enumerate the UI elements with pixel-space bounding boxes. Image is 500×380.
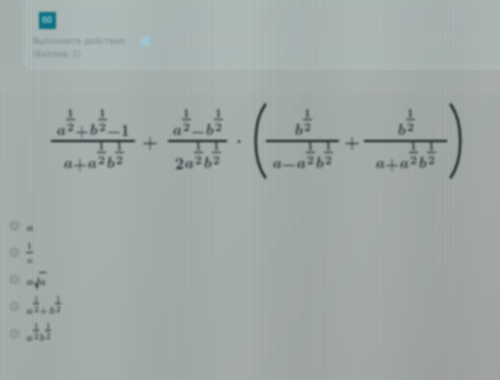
staticText: 2	[213, 151, 220, 168]
staticText: 1	[116, 137, 123, 154]
staticText: 2	[304, 118, 311, 135]
staticText: 2	[34, 330, 39, 341]
staticText: 2	[56, 303, 61, 314]
staticText: 1	[304, 104, 311, 121]
staticText: 2	[116, 151, 123, 168]
staticText: a	[375, 150, 385, 173]
staticText: 1	[183, 104, 190, 121]
staticText: a	[172, 117, 182, 140]
staticText: b	[49, 302, 55, 317]
staticText: a	[296, 150, 306, 173]
staticText: 1	[98, 137, 105, 154]
staticText: 2	[195, 151, 202, 168]
staticText: +	[39, 302, 49, 317]
staticText: b	[294, 117, 303, 140]
staticText: 1	[428, 137, 435, 154]
staticText: b	[397, 117, 406, 140]
staticText: b	[418, 150, 427, 173]
staticText: a	[26, 329, 33, 344]
staticText: a	[26, 302, 33, 317]
staticText: a	[39, 273, 46, 288]
staticText: 2	[410, 151, 417, 168]
staticText: 2	[215, 118, 222, 135]
staticText: 1	[407, 104, 414, 121]
staticText: ·	[231, 128, 248, 154]
staticText: 1	[34, 320, 39, 331]
staticText: 1	[27, 239, 33, 252]
staticText: b	[106, 150, 115, 173]
staticText: b	[315, 150, 324, 173]
staticText: a	[272, 150, 282, 173]
staticText: +	[385, 151, 399, 173]
staticText: 1	[215, 104, 222, 121]
staticText: 2	[175, 151, 184, 173]
staticText: a	[56, 117, 66, 140]
staticText: b	[205, 117, 214, 140]
staticText: 2	[46, 330, 51, 341]
staticText: a	[63, 150, 73, 173]
staticText: 60	[42, 16, 53, 25]
staticText: b	[89, 117, 98, 140]
staticText: 1	[195, 137, 202, 154]
staticText: Выполните действия:	[33, 36, 127, 46]
staticText: 2	[98, 151, 105, 168]
staticText: b	[203, 150, 212, 173]
button[interactable]: a	[0, 293, 500, 320]
staticText: a	[26, 272, 33, 288]
staticText: −	[191, 118, 205, 140]
button[interactable]: 60	[39, 12, 56, 29]
staticText: a	[27, 253, 33, 266]
staticText: 1	[46, 320, 51, 331]
staticText: −	[282, 151, 296, 173]
staticText: 2	[407, 118, 414, 135]
staticText: 2	[34, 303, 39, 314]
staticText: 1	[56, 293, 61, 304]
staticText: +	[344, 128, 361, 154]
staticText: 2	[307, 151, 314, 168]
staticText: 2	[183, 118, 190, 135]
button[interactable]: a	[0, 320, 500, 347]
staticText: 1	[99, 104, 106, 121]
staticText: +	[73, 151, 87, 173]
button[interactable]: a	[0, 266, 500, 293]
button[interactable]: a	[0, 212, 500, 239]
staticText: +	[75, 118, 89, 140]
staticText: 1	[307, 137, 314, 154]
staticText: +	[142, 128, 159, 154]
staticText: a	[184, 150, 194, 173]
staticText: 1	[67, 104, 74, 121]
staticText: −1	[107, 118, 130, 140]
staticText: (Баллов: 1)	[33, 49, 81, 59]
button[interactable]: 1	[0, 239, 500, 266]
staticText: 1	[325, 137, 332, 154]
staticText: 2	[99, 118, 106, 135]
staticText: a	[399, 150, 409, 173]
staticText: 2	[428, 151, 435, 168]
staticText: 1	[410, 137, 417, 154]
staticText: b	[39, 329, 45, 344]
staticText: a	[87, 150, 97, 173]
staticText: a	[26, 218, 33, 234]
staticText: 2	[325, 151, 332, 168]
button[interactable]: Attachment	[141, 37, 150, 46]
staticText: 1	[34, 293, 39, 304]
staticText: 1	[213, 137, 220, 154]
staticText: 2	[67, 118, 74, 135]
